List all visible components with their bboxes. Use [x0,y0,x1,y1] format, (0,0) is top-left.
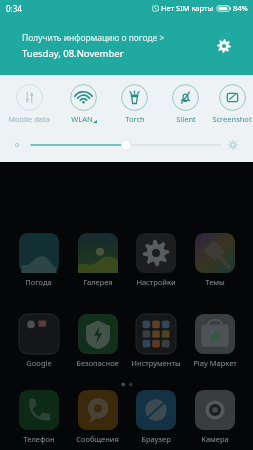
staticText: Погода [25,277,52,287]
staticText: Инструменты [131,358,181,368]
staticText: WLAN [71,114,93,124]
button[interactable]: Mobile data [0,82,58,124]
button[interactable]: Сообщения [70,390,125,444]
staticText: Сообщения [76,434,119,444]
staticText: Безопасное [76,358,119,368]
staticText: Камера [201,434,229,444]
button[interactable]: Получить информацию о погоде > [22,32,165,60]
staticText: Torch [125,114,145,124]
staticText: Google [26,358,52,368]
button[interactable]: Silent [160,82,211,124]
staticText: Телефон [23,434,55,444]
button[interactable]: WLAN [58,82,109,124]
staticText: Браузер [141,434,171,444]
staticText: Screenshot [212,114,252,124]
staticText: Получить информацию о погоде > [22,32,165,44]
button[interactable]: Brightness [0,137,253,153]
button[interactable]: Телефон [11,390,66,444]
staticText: Silent [176,114,196,124]
button[interactable]: Torch [109,82,160,124]
staticText: Темы [205,277,225,287]
button[interactable]: Темы [187,233,242,287]
staticText: Play Маркет [193,358,237,368]
button[interactable]: Настройки [128,233,183,287]
staticText: 0:34 [6,3,22,14]
button[interactable]: Инструменты [128,314,183,368]
button[interactable]: Браузер [128,390,183,444]
button[interactable]: Settings [211,33,237,59]
button[interactable]: Безопасное [70,314,125,368]
staticText: 84% [233,3,248,13]
button[interactable]: Галерея [70,233,125,287]
button[interactable]: Screenshot [211,82,253,124]
staticText: Нет SIM карты [161,3,214,13]
button[interactable]: Play Маркет [187,314,242,368]
staticText: Настройки [136,277,176,287]
button[interactable]: Google [11,314,66,368]
button[interactable]: Погода [11,233,66,287]
button[interactable]: Камера [187,390,242,444]
staticText: Mobile data [8,114,50,124]
staticText: Tuesday, 08.November [22,47,124,60]
staticText: Галерея [83,277,113,287]
